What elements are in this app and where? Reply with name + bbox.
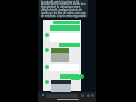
other: Settings [87,94,90,97]
other: Send [79,74,84,79]
other: Fullscreen [91,94,94,97]
staticText: Je suis allé voir le bus hier et j'ai di… [41,0,86,18]
other: Captions [81,94,84,97]
other: Play [42,94,44,96]
